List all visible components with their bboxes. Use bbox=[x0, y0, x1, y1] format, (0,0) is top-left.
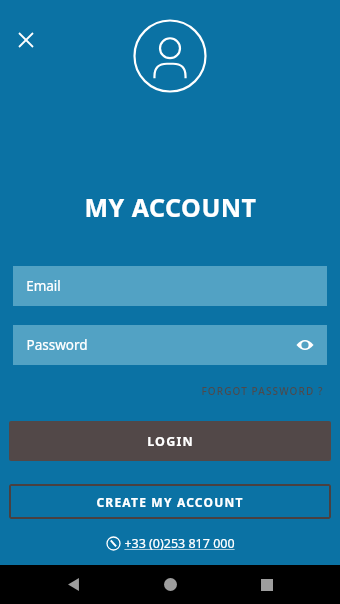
staticText: MY ACCOUNT bbox=[84, 190, 257, 224]
button[interactable]: LOGIN bbox=[9, 421, 331, 461]
button[interactable]: Recent apps bbox=[243, 565, 291, 604]
button[interactable]: Password bbox=[13, 325, 327, 365]
staticText: Email bbox=[26, 277, 61, 295]
button[interactable]: Close bbox=[8, 22, 44, 58]
button[interactable]: +33 (0)253 817 000 bbox=[106, 535, 235, 552]
staticText: FORGOT PASSWORD ? bbox=[201, 384, 324, 398]
staticText: Password bbox=[26, 336, 88, 354]
button[interactable]: Show password bbox=[291, 331, 319, 359]
button[interactable]: Back bbox=[49, 565, 97, 604]
button[interactable]: Home bbox=[146, 565, 194, 604]
staticText: CREATE MY ACCOUNT bbox=[96, 494, 244, 510]
button[interactable]: CREATE MY ACCOUNT bbox=[9, 484, 331, 519]
staticText: +33 (0)253 817 000 bbox=[124, 535, 235, 552]
button[interactable]: FORGOT PASSWORD ? bbox=[199, 382, 326, 400]
staticText: LOGIN bbox=[147, 433, 194, 450]
button[interactable]: Email bbox=[13, 266, 327, 306]
